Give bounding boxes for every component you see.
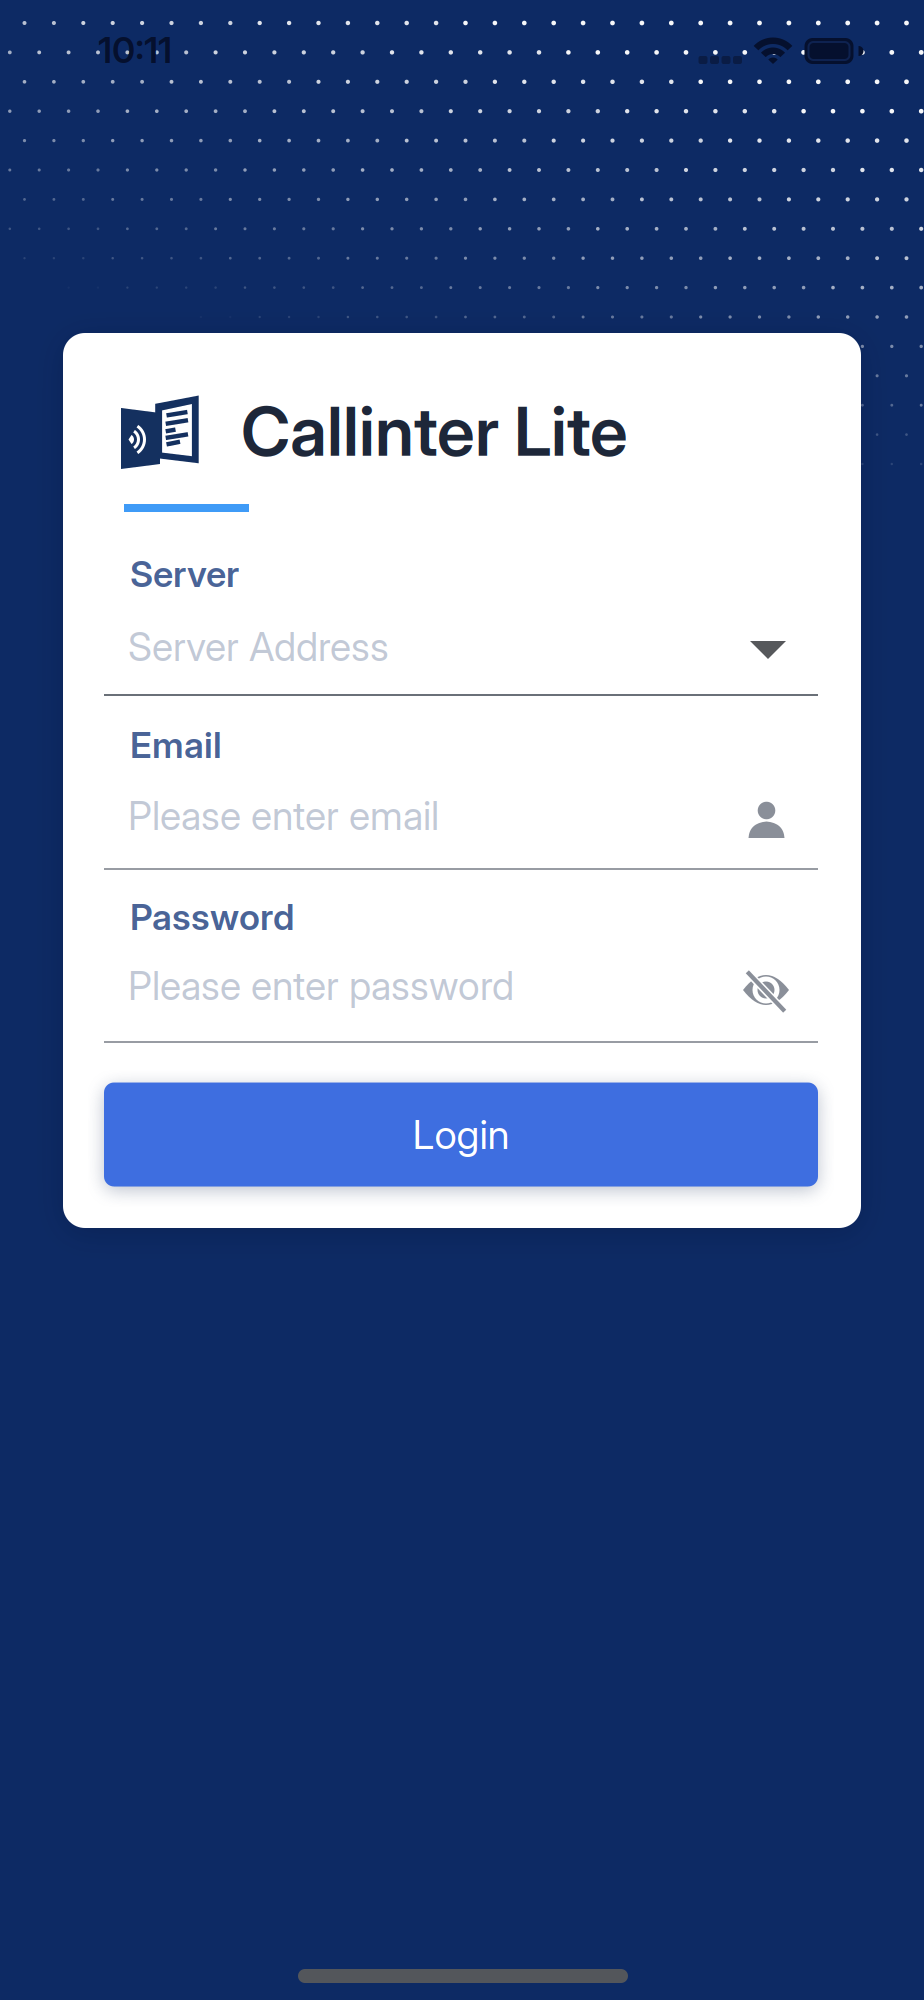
staticText: Password [130, 896, 294, 938]
button[interactable]: Login [104, 1082, 818, 1186]
staticText: 10:11 [98, 29, 172, 71]
staticText: Callinter Lite [241, 390, 628, 472]
button[interactable]: Select server [750, 641, 786, 659]
staticText: Server [130, 553, 239, 595]
staticText: Email [130, 724, 222, 766]
staticText: Please enter password [128, 963, 514, 1009]
staticText: Please enter email [128, 793, 439, 839]
staticText: Login [412, 1111, 509, 1158]
staticText: Server Address [128, 624, 389, 670]
button[interactable]: Show password [736, 960, 796, 1020]
